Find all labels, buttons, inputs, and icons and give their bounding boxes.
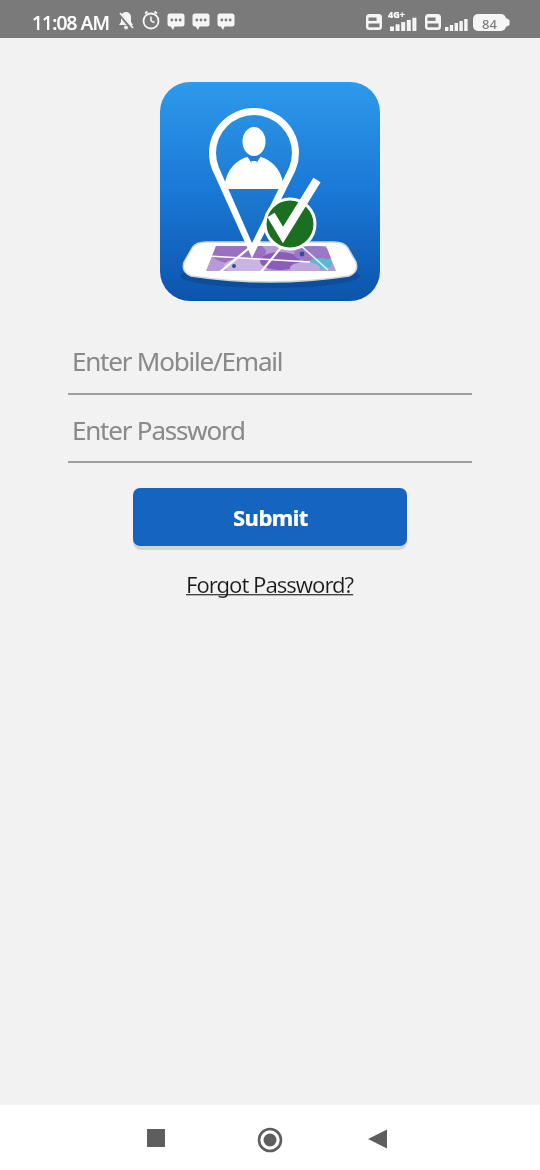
staticText: Submit (233, 502, 308, 532)
button[interactable] (141, 1123, 171, 1153)
staticText: Enter Password (72, 412, 245, 447)
staticText: Enter Mobile/Email (72, 343, 283, 378)
button[interactable]: Submit (133, 488, 407, 546)
button[interactable] (255, 1125, 285, 1155)
staticText: 4G+ (388, 8, 405, 20)
button[interactable] (363, 1124, 393, 1154)
button[interactable]: Forgot Password? (186, 569, 354, 599)
staticText: 11:08 AM (32, 10, 110, 36)
staticText: 84 (482, 15, 497, 33)
